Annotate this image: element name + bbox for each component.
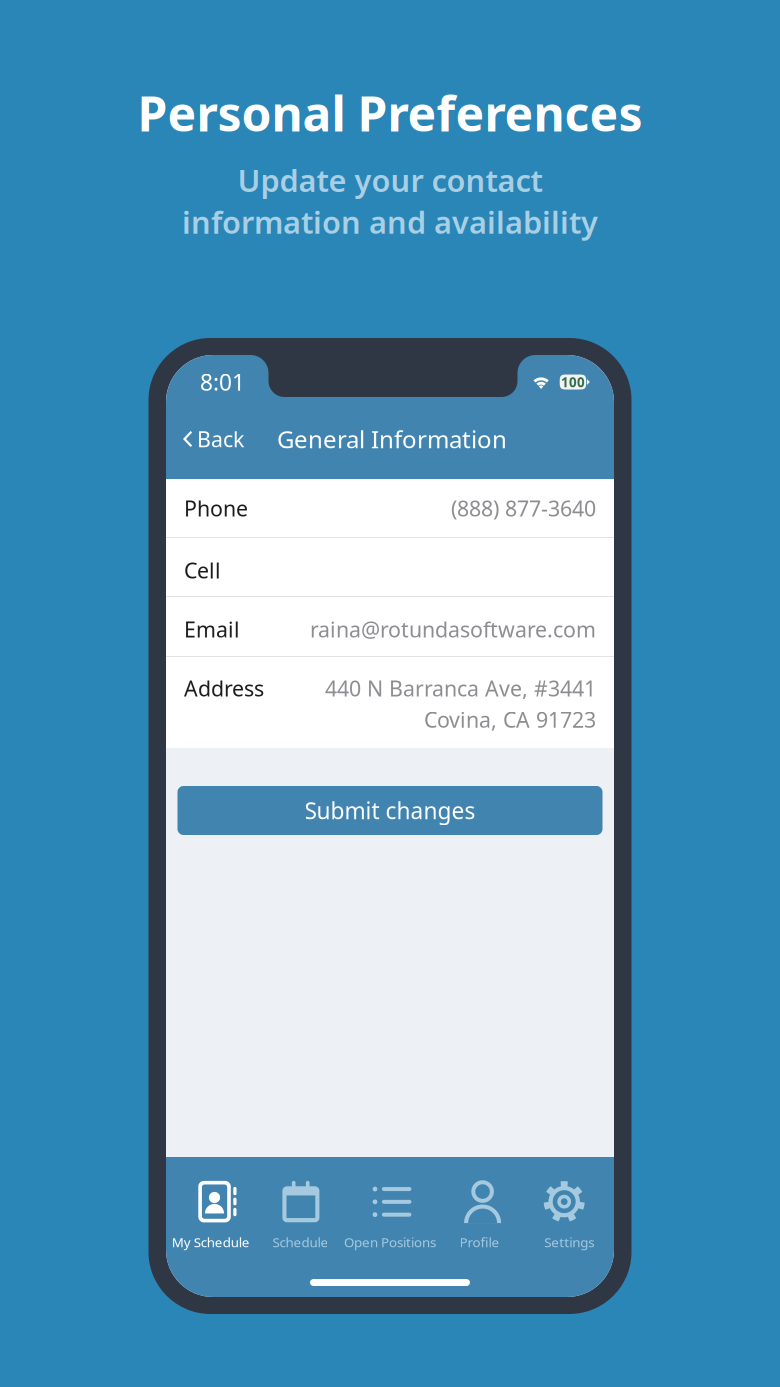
button[interactable]: Email (166, 597, 614, 656)
staticText: Profile (460, 1233, 500, 1251)
button[interactable]: Schedule (256, 1157, 345, 1252)
staticText: raina@rotundasoftware.com (310, 615, 596, 643)
button[interactable]: My Schedule (166, 1157, 256, 1252)
staticText: information and availability (182, 201, 598, 242)
staticText: General Information (277, 423, 507, 455)
staticText: 8:01 (200, 367, 245, 397)
staticText: (888) 877-3640 (451, 494, 596, 522)
staticText: My Schedule (172, 1233, 250, 1251)
button[interactable]: Open Positions (345, 1157, 435, 1252)
staticText: Covina, CA 91723 (424, 705, 596, 734)
button[interactable]: Cell (166, 538, 614, 596)
staticText: Phone (184, 494, 248, 522)
staticText: Address (184, 674, 264, 702)
staticText: Submit changes (304, 795, 475, 825)
button[interactable]: Address (166, 657, 614, 748)
staticText: Email (184, 615, 240, 643)
staticText: Update your contact (237, 160, 542, 200)
staticText: Cell (184, 556, 221, 584)
staticText: Personal Preferences (137, 81, 642, 145)
staticText: Schedule (272, 1233, 328, 1251)
button[interactable]: Settings (524, 1157, 614, 1252)
staticText: 100 (561, 373, 585, 391)
button[interactable]: Submit changes (177, 786, 602, 835)
staticText: Back (197, 425, 244, 453)
button[interactable]: Back (166, 414, 277, 464)
staticText: Open Positions (344, 1233, 436, 1251)
staticText: Settings (544, 1233, 594, 1251)
button[interactable]: Phone (166, 479, 614, 537)
button[interactable]: Profile (435, 1157, 524, 1252)
staticText: 440 N Barranca Ave, #3441 (325, 674, 596, 702)
